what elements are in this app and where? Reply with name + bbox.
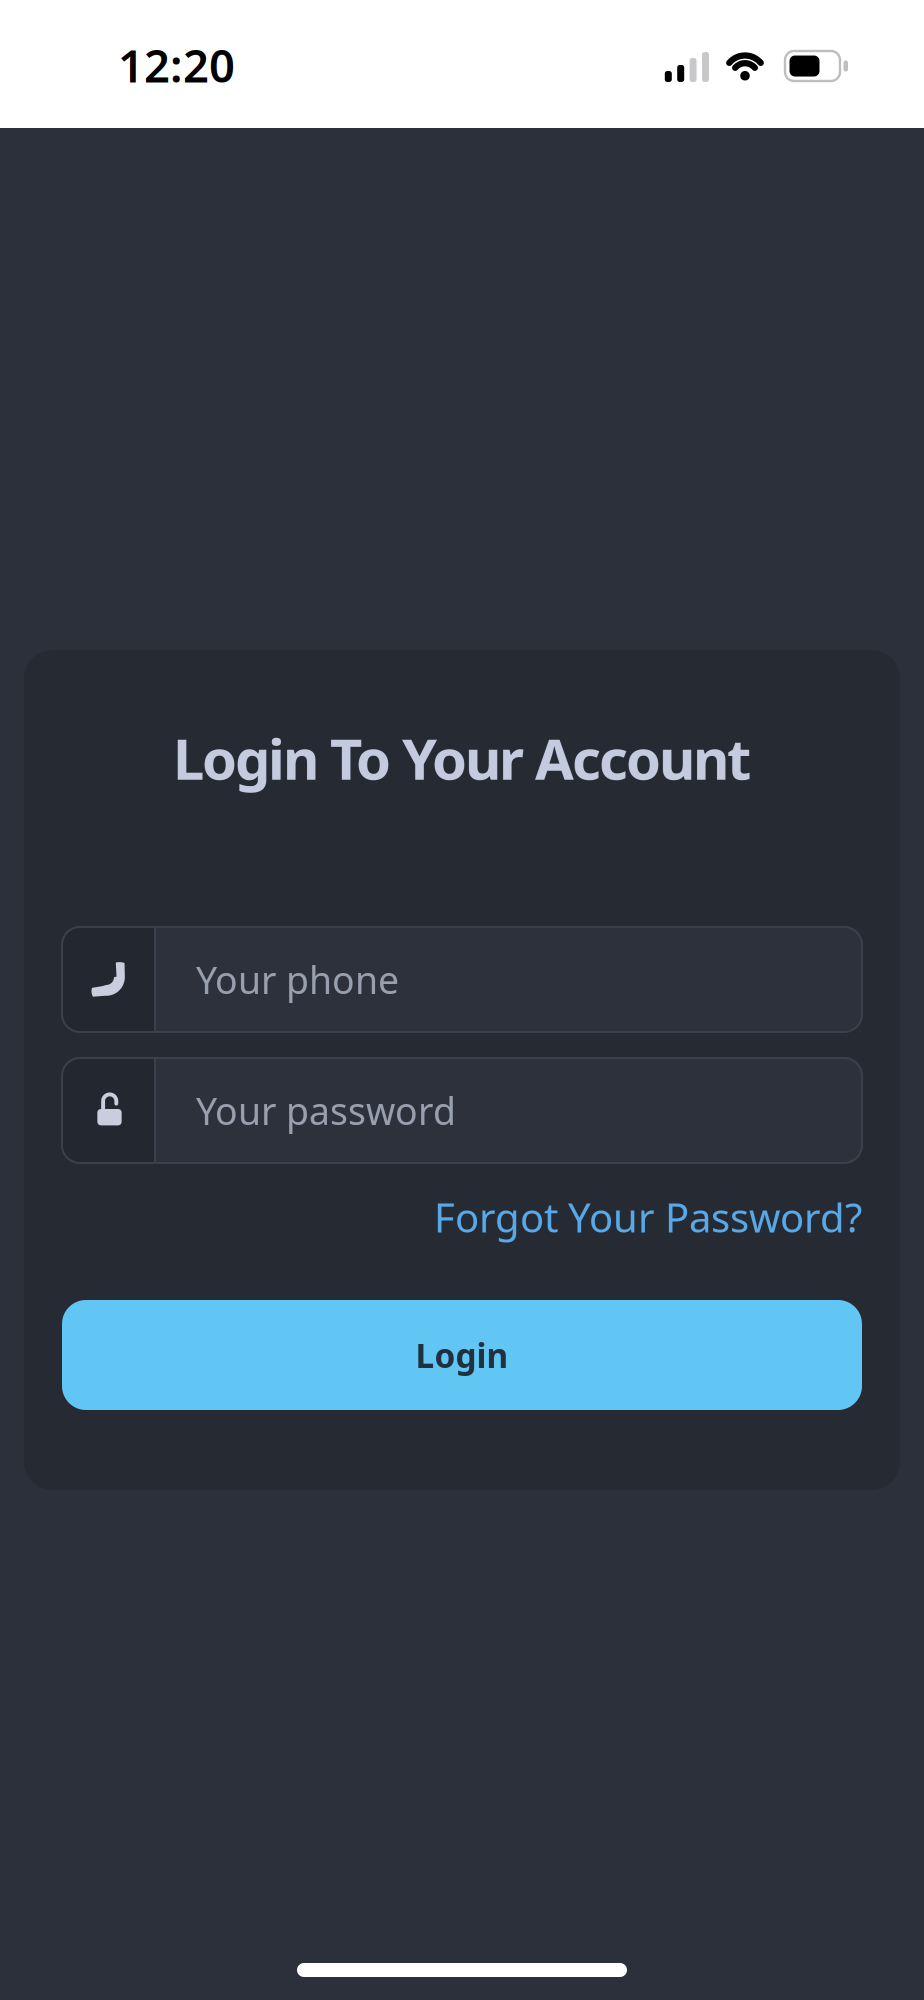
staticText: 12:20	[118, 35, 235, 95]
staticText: Your password	[196, 1086, 456, 1135]
staticText: Login To Your Account	[173, 721, 751, 795]
staticText: Your phone	[196, 955, 399, 1004]
staticText: Forgot Your Password?	[434, 1190, 862, 1243]
staticText: Login	[415, 1333, 508, 1377]
